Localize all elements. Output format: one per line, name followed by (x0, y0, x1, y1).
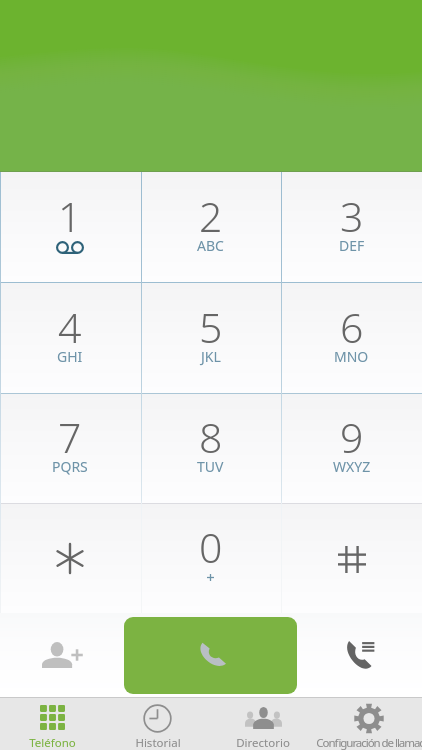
staticText: 6 (340, 299, 364, 355)
staticText: 8 (199, 409, 223, 465)
button[interactable]: 0 (140, 503, 281, 613)
staticText: 0 (199, 519, 223, 575)
button[interactable] (0, 503, 140, 613)
staticText: MNO (334, 347, 369, 366)
button[interactable]: 2 (140, 172, 281, 283)
staticText: GHI (57, 347, 83, 366)
staticText: 5 (199, 299, 223, 355)
button[interactable]: 1 (0, 172, 140, 283)
staticText: TUV (197, 457, 224, 476)
button[interactable] (281, 503, 422, 613)
button[interactable]: Call (124, 617, 297, 694)
staticText: PQRS (52, 457, 88, 476)
button[interactable]: Directorio (210, 698, 316, 750)
staticText: 7 (58, 409, 82, 465)
staticText: Directorio (236, 735, 290, 750)
staticText: 4 (58, 299, 82, 355)
button[interactable]: 6 (281, 283, 422, 394)
button[interactable]: Call log (297, 613, 422, 697)
button[interactable]: 8 (140, 393, 281, 503)
button[interactable]: 4 (0, 283, 140, 394)
staticText: Teléfono (29, 735, 76, 750)
staticText: Historial (135, 735, 181, 750)
button[interactable]: Configuración de llamada (316, 698, 422, 750)
staticText: Configuración de llamada (316, 735, 422, 750)
staticText: 1 (58, 188, 82, 244)
staticText: JKL (201, 347, 221, 366)
button[interactable]: 7 (0, 393, 140, 503)
staticText: DEF (339, 236, 365, 255)
button[interactable]: Add to contacts (0, 613, 124, 697)
staticText: WXYZ (333, 457, 371, 476)
staticText: ABC (197, 236, 224, 255)
staticText: 9 (340, 409, 364, 465)
staticText: 2 (199, 188, 223, 244)
button[interactable]: 9 (281, 393, 422, 503)
button[interactable]: Historial (105, 698, 210, 750)
button[interactable]: 3 (281, 172, 422, 283)
button[interactable]: 5 (140, 283, 281, 394)
staticText: 3 (340, 188, 364, 244)
button[interactable]: Teléfono (0, 698, 105, 750)
